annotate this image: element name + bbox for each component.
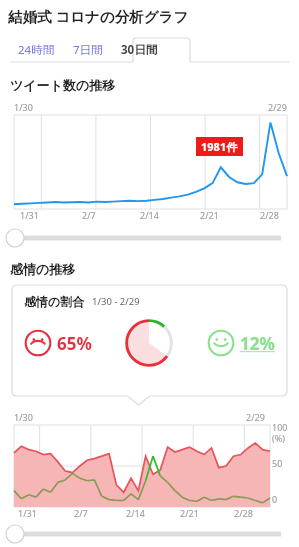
staticText: 感情の推移 — [10, 261, 76, 277]
staticText: 7日間 — [73, 42, 103, 58]
button[interactable]: Positive sentiment — [207, 329, 275, 357]
button[interactable]: Range slider — [0, 227, 299, 249]
staticText: 24時間 — [18, 42, 55, 58]
staticText: 2/14 — [126, 507, 145, 519]
staticText: 1/31 — [20, 209, 39, 221]
staticText: 2/21 — [180, 507, 199, 519]
other: Positive sentiment — [207, 329, 235, 357]
staticText: 100 — [272, 421, 288, 433]
staticText: 結婚式 コロナの分析グラフ — [8, 6, 189, 26]
staticText: 2/14 — [140, 209, 159, 221]
staticText: 2/28 — [260, 209, 279, 221]
staticText: 50 — [272, 457, 283, 469]
staticText: 65% — [57, 332, 92, 355]
staticText: 2/21 — [200, 209, 219, 221]
staticText: 1981件 — [201, 139, 238, 154]
staticText: 1/30 — [14, 411, 33, 423]
staticText: 0 — [272, 493, 278, 505]
button[interactable]: 24時間 — [18, 36, 55, 63]
staticText: 2/29 — [268, 101, 287, 113]
button[interactable]: Negative sentiment — [24, 329, 92, 357]
staticText: 12% — [240, 332, 275, 355]
staticText: (%) — [272, 432, 285, 444]
button[interactable]: Range slider — [0, 523, 299, 545]
staticText: 1/30 — [14, 101, 33, 113]
staticText: ツイート数の推移 — [10, 77, 116, 93]
staticText: 2/7 — [82, 209, 96, 221]
staticText: 2/28 — [234, 507, 253, 519]
staticText: 1/31 — [18, 507, 37, 519]
staticText: 2/7 — [74, 507, 88, 519]
staticText: 30日間 — [121, 42, 158, 58]
button[interactable]: 30日間 — [121, 36, 158, 63]
staticText: 1/30 - 2/29 — [92, 295, 140, 308]
staticText: 2/29 — [246, 411, 265, 423]
button[interactable]: 7日間 — [73, 36, 103, 63]
button[interactable]: 1981件 — [201, 139, 238, 154]
other: Sentiment ratio donut — [123, 317, 175, 369]
other: Negative sentiment — [24, 329, 52, 357]
staticText: 感情の割合 — [24, 294, 85, 309]
